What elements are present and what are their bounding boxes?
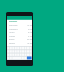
staticText: 2.10 [28,35,32,38]
button[interactable]: Transport [9,28,32,32]
staticText: Monday [9,20,18,23]
button[interactable]: Dinner [9,42,32,46]
staticText: Lunch [9,31,15,34]
staticText: 24.00 [27,38,32,41]
staticText: Transport [9,28,18,31]
button[interactable]: Books [9,38,32,42]
staticText: 8.75 [28,31,32,34]
staticText: Groceries [9,24,18,27]
staticText: Coffee [9,35,15,38]
button[interactable]: Lunch [9,31,32,35]
button[interactable]: Groceries [9,24,32,28]
staticText: 12.40 [27,24,32,27]
button[interactable]: Top app bar [7,16,32,20]
staticText: 16.50 [27,42,32,45]
staticText: 3.20 [28,28,32,31]
staticText: Dinner [9,42,16,45]
button[interactable]: Enter [27,56,32,59]
staticText: Books [9,38,15,41]
button[interactable]: Coffee [9,35,32,39]
